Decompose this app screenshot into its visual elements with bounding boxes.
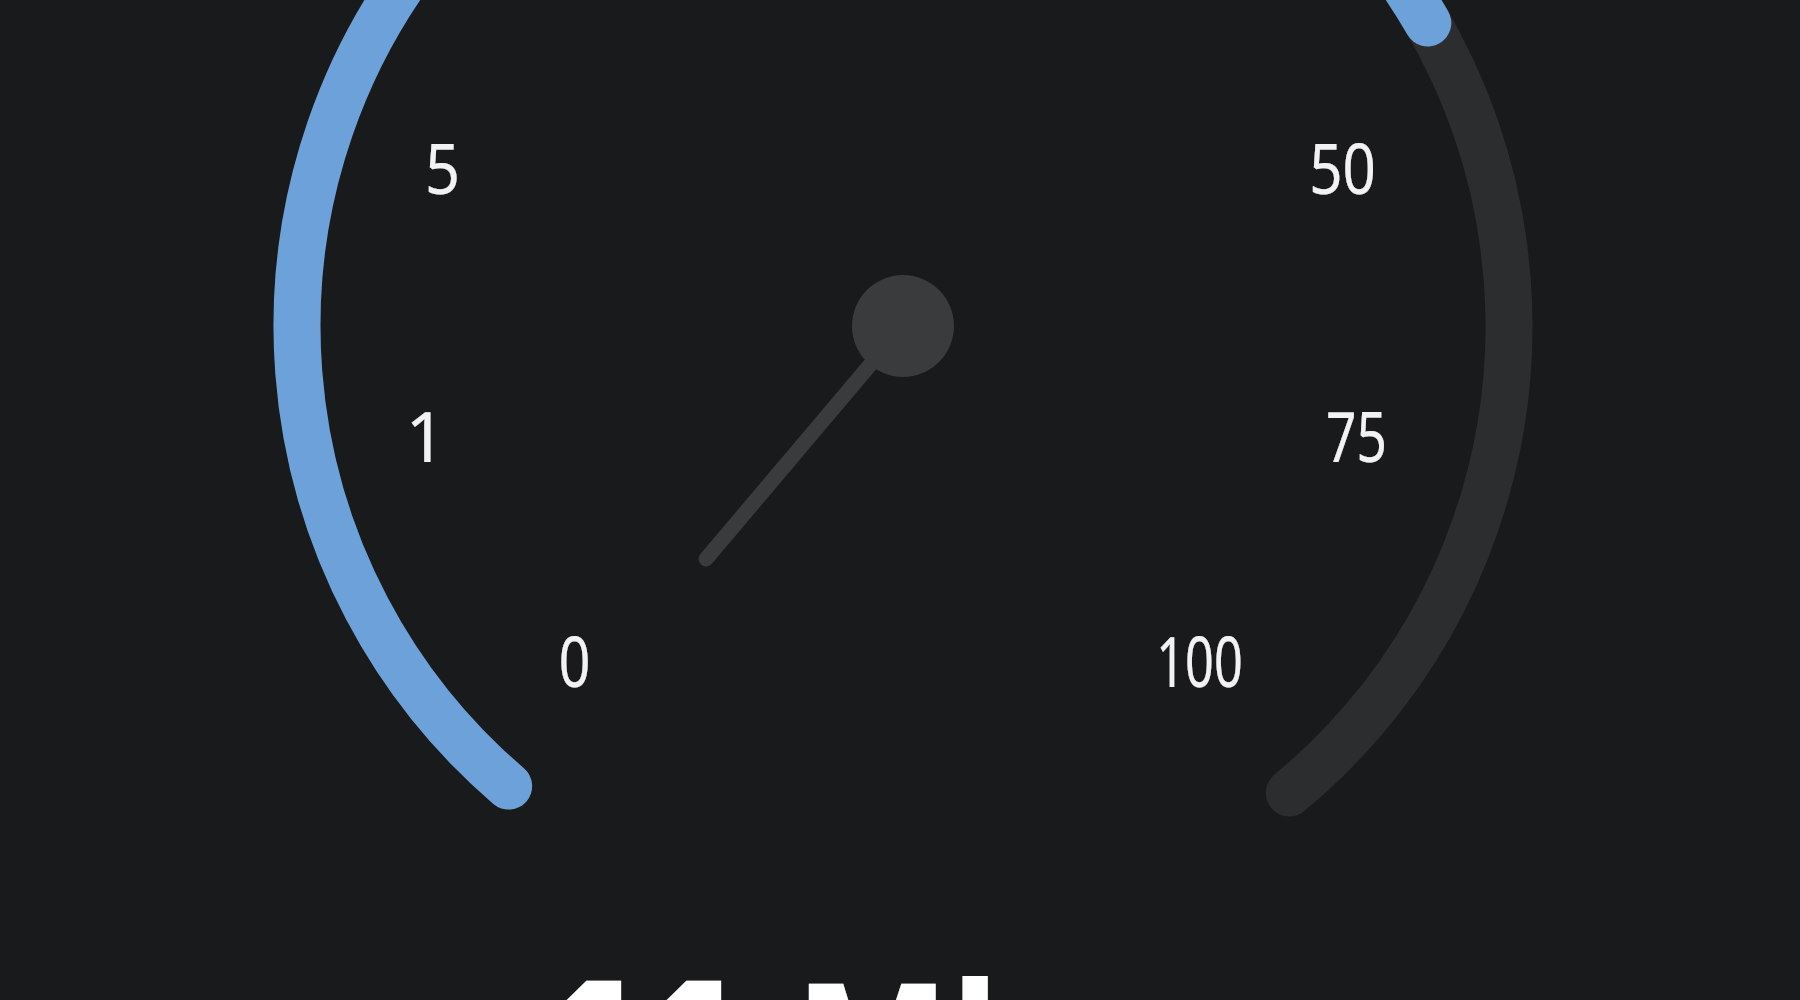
staticText: 4 [604,922,747,1000]
staticText: 0 [558,612,591,707]
staticText: Mbps [794,925,1244,1000]
staticText: 50 [1309,119,1376,214]
staticText: 100 [1156,612,1243,707]
staticText: 1 [405,387,446,482]
staticText: 5 [425,119,460,214]
staticText: 4 [504,922,647,1000]
staticText: 75 [1326,387,1387,482]
